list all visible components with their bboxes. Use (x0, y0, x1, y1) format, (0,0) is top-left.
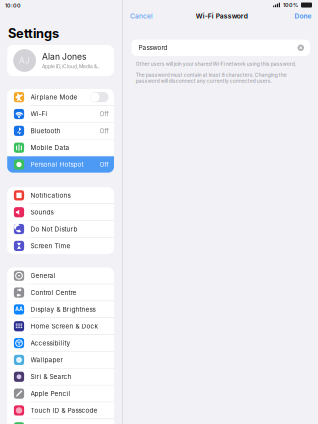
button[interactable]: Touch ID & Passcode (7, 402, 114, 419)
button[interactable]: Battery (7, 419, 114, 424)
staticText: Settings (8, 25, 59, 41)
staticText: Done (294, 12, 311, 20)
staticText: Off (99, 161, 108, 168)
staticText: Airplane Mode (30, 93, 77, 101)
staticText: Accessibility (30, 339, 70, 347)
button[interactable]: Done (288, 10, 318, 22)
staticText: Mobile Data (30, 144, 69, 151)
button[interactable]: Notifications (7, 187, 114, 203)
staticText: Off (99, 127, 108, 135)
staticText: Sounds (30, 208, 53, 216)
staticText: Cancel (130, 12, 153, 20)
staticText: Bluetooth (30, 127, 60, 135)
button[interactable]: Do Not Disturb (7, 221, 114, 237)
button[interactable]: Sounds (7, 204, 114, 220)
staticText: Personal Hotspot (30, 161, 83, 168)
staticText: Screen Time (30, 242, 70, 250)
staticText: 100% (283, 2, 298, 8)
button[interactable]: Personal Hotspot (7, 156, 114, 173)
button[interactable]: Siri & Search (7, 369, 114, 385)
staticText: Notifications (30, 191, 70, 199)
staticText: Siri & Search (30, 373, 71, 381)
staticText: Control Centre (30, 289, 76, 296)
staticText: Off (99, 110, 108, 118)
button[interactable]: AA (7, 301, 114, 317)
button[interactable]: Wi-Fi (7, 106, 114, 122)
staticText: Other users will join your shared Wi-Fi … (136, 61, 296, 67)
button[interactable]: Control Centre (7, 284, 114, 301)
staticText: Touch ID & Passcode (30, 407, 97, 414)
button[interactable]: Mobile Data (7, 139, 114, 156)
button[interactable]: Wallpaper (7, 352, 114, 368)
button[interactable]: Clear text (298, 44, 304, 51)
button[interactable]: Screen Time (7, 238, 114, 254)
staticText: Do Not Disturb (30, 225, 77, 233)
staticText: General (30, 272, 55, 280)
staticText: Apple Pencil (30, 390, 70, 397)
staticText: Apple ID, iCloud, Media &... (42, 63, 100, 69)
staticText: The password must contain at least 8 cha… (136, 72, 287, 84)
button[interactable]: Airplane Mode (7, 89, 114, 105)
staticText: Alan Jones (42, 52, 87, 62)
button[interactable]: Accessibility (7, 335, 114, 351)
button[interactable]: Home Screen & Dock (7, 318, 114, 334)
staticText: Wi-Fi (30, 110, 47, 118)
button[interactable]: Cancel (122, 10, 159, 22)
staticText: Display & Brightness (30, 305, 95, 313)
button[interactable]: General (7, 268, 114, 284)
staticText: Password (138, 44, 167, 52)
button[interactable]: AJ (7, 45, 114, 76)
button[interactable]: Apple Pencil (7, 385, 114, 402)
staticText: AA (15, 306, 23, 313)
staticText: 10:00 (5, 2, 21, 9)
staticText: AJ (19, 55, 30, 65)
staticText: Wi-Fi Password (196, 12, 248, 20)
button[interactable]: Bluetooth (7, 123, 114, 139)
staticText: Wallpaper (30, 356, 62, 364)
staticText: Home Screen & Dock (30, 322, 98, 330)
